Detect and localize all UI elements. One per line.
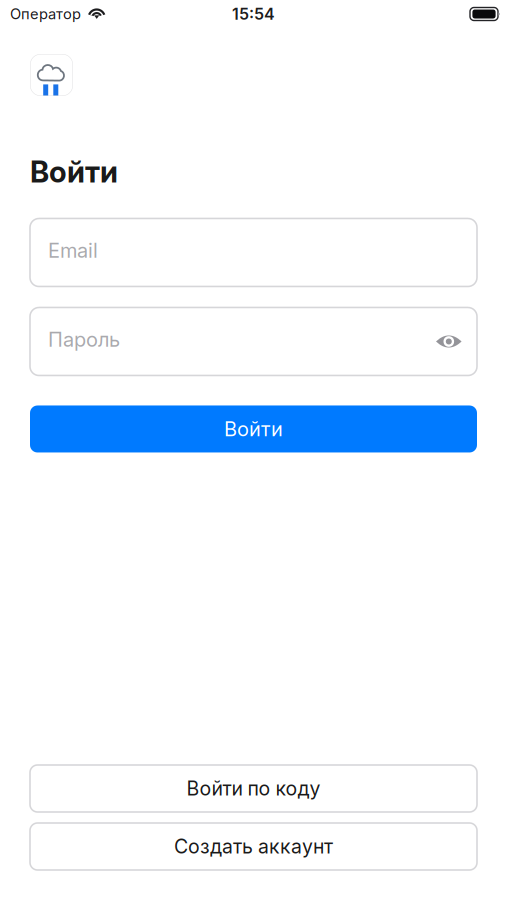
button[interactable]: Войти по коду [30, 765, 477, 812]
staticText: Создать аккаунт [174, 835, 333, 858]
staticText: Войти [224, 417, 283, 441]
button[interactable]: Создать аккаунт [30, 823, 477, 870]
staticText: Войти [30, 154, 118, 189]
button[interactable]: Email [30, 218, 477, 286]
staticText: 15:54 [232, 4, 275, 24]
button[interactable]: Пароль [30, 307, 477, 375]
staticText: Пароль [48, 327, 120, 352]
button[interactable]: Войти [30, 405, 477, 452]
staticText: Войти по коду [186, 777, 320, 800]
staticText: Email [48, 238, 98, 263]
staticText: Оператор [10, 5, 81, 23]
